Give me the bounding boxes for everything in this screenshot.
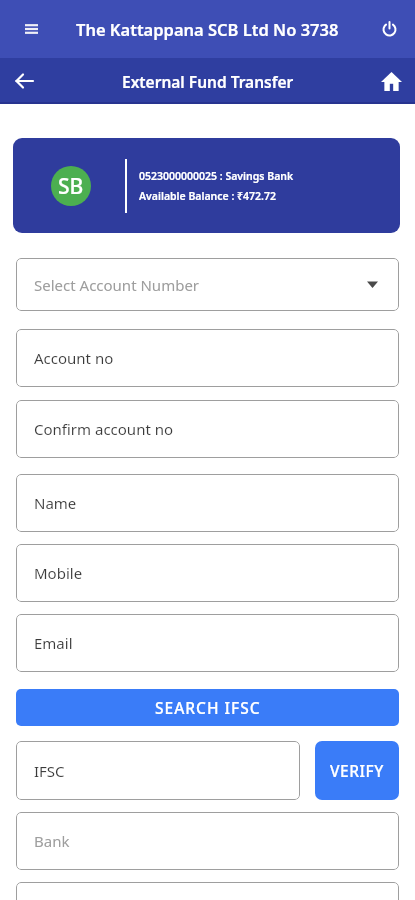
staticText: Bank [34,831,70,851]
button[interactable]: Bank [16,812,399,870]
button[interactable] [378,68,404,94]
staticText: VERIFY [330,760,384,781]
button[interactable]: Mobile [16,544,399,602]
button[interactable] [376,16,402,42]
staticText: External Fund Transfer [122,71,294,92]
staticText: SB [58,172,84,201]
button[interactable]: SB [13,138,400,233]
button[interactable]: Name [16,474,399,532]
button[interactable]: SEARCH IFSC [16,689,399,726]
staticText: The Kattappana SCB Ltd No 3738 [76,18,339,40]
button[interactable] [18,16,44,42]
staticText: Confirm account no [34,419,174,439]
button[interactable]: Select Account Number [16,258,399,311]
button[interactable]: Account no [16,329,399,387]
button[interactable]: Confirm account no [16,400,399,458]
button[interactable]: VERIFY [315,741,399,800]
staticText: IFSC [34,761,65,781]
button[interactable]: IFSC [16,741,300,800]
staticText: Select Account Number [34,275,200,295]
button[interactable] [10,67,38,95]
button[interactable] [16,882,399,900]
staticText: 0523000000025 : Savings Bank [139,169,294,183]
staticText: Name [34,493,77,513]
staticText: Account no [34,348,114,368]
staticText: Email [34,633,73,653]
button[interactable]: Email [16,614,399,672]
staticText: Available Balance : ₹472.72 [139,189,277,203]
staticText: SEARCH IFSC [155,697,261,718]
staticText: Mobile [34,563,83,583]
